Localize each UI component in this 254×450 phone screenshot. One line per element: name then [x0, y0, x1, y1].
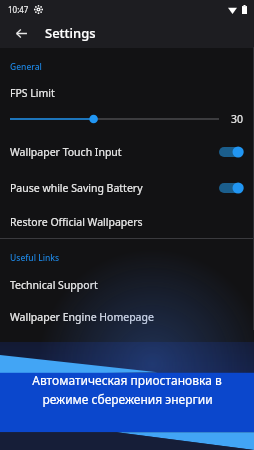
staticText: Settings	[45, 24, 96, 42]
button[interactable]: Pause while Saving Battery	[0, 170, 254, 206]
staticText: Technical Support	[10, 278, 98, 292]
staticText: режиме сбережения энергии	[42, 391, 213, 407]
staticText: Restore Official Wallpapers	[10, 215, 143, 229]
button[interactable]: Back	[10, 22, 32, 44]
button[interactable]: Wallpaper Engine Homepage	[0, 301, 254, 333]
button[interactable]: FPS Limit	[0, 78, 254, 134]
staticText: Pause while Saving Battery	[10, 181, 143, 195]
staticText: Wallpaper Touch Input	[10, 145, 122, 159]
staticText: 10:47	[8, 4, 29, 15]
staticText: General	[10, 61, 42, 73]
staticText: Wallpaper Engine Homepage	[10, 310, 154, 324]
button[interactable]: Restore Official Wallpapers	[0, 206, 254, 238]
staticText: FPS Limit	[10, 86, 55, 100]
staticText: Useful Links	[10, 252, 60, 264]
button[interactable]: Technical Support	[0, 269, 254, 301]
button[interactable]: Wallpaper Touch Input	[0, 134, 254, 170]
staticText: 30	[231, 112, 244, 126]
staticText: Автоматическая приостановка в	[32, 372, 222, 388]
